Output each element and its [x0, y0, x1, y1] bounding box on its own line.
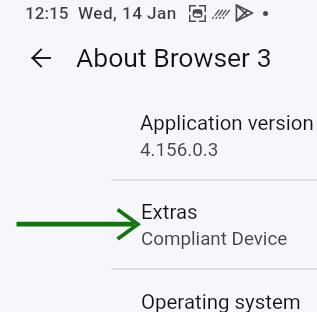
other: Screenshot: [189, 5, 206, 22]
button[interactable]: Extras: [0, 181, 317, 267]
staticText: About Browser 3: [76, 42, 272, 73]
button[interactable]: Back: [17, 34, 65, 82]
staticText: Wed, 14 Jan: [78, 3, 177, 23]
staticText: 4.156.0.3: [140, 139, 219, 161]
staticText: Compliant Device: [141, 228, 288, 250]
staticText: Operating system: [141, 290, 301, 312]
staticText: Extras: [141, 200, 198, 224]
other: Data saver: [212, 9, 229, 19]
staticText: Application version: [140, 111, 314, 135]
button[interactable]: Application version: [0, 98, 317, 178]
other: Play Store: [235, 4, 253, 22]
button[interactable]: Operating system: [0, 270, 317, 312]
staticText: 12:15: [25, 3, 69, 23]
